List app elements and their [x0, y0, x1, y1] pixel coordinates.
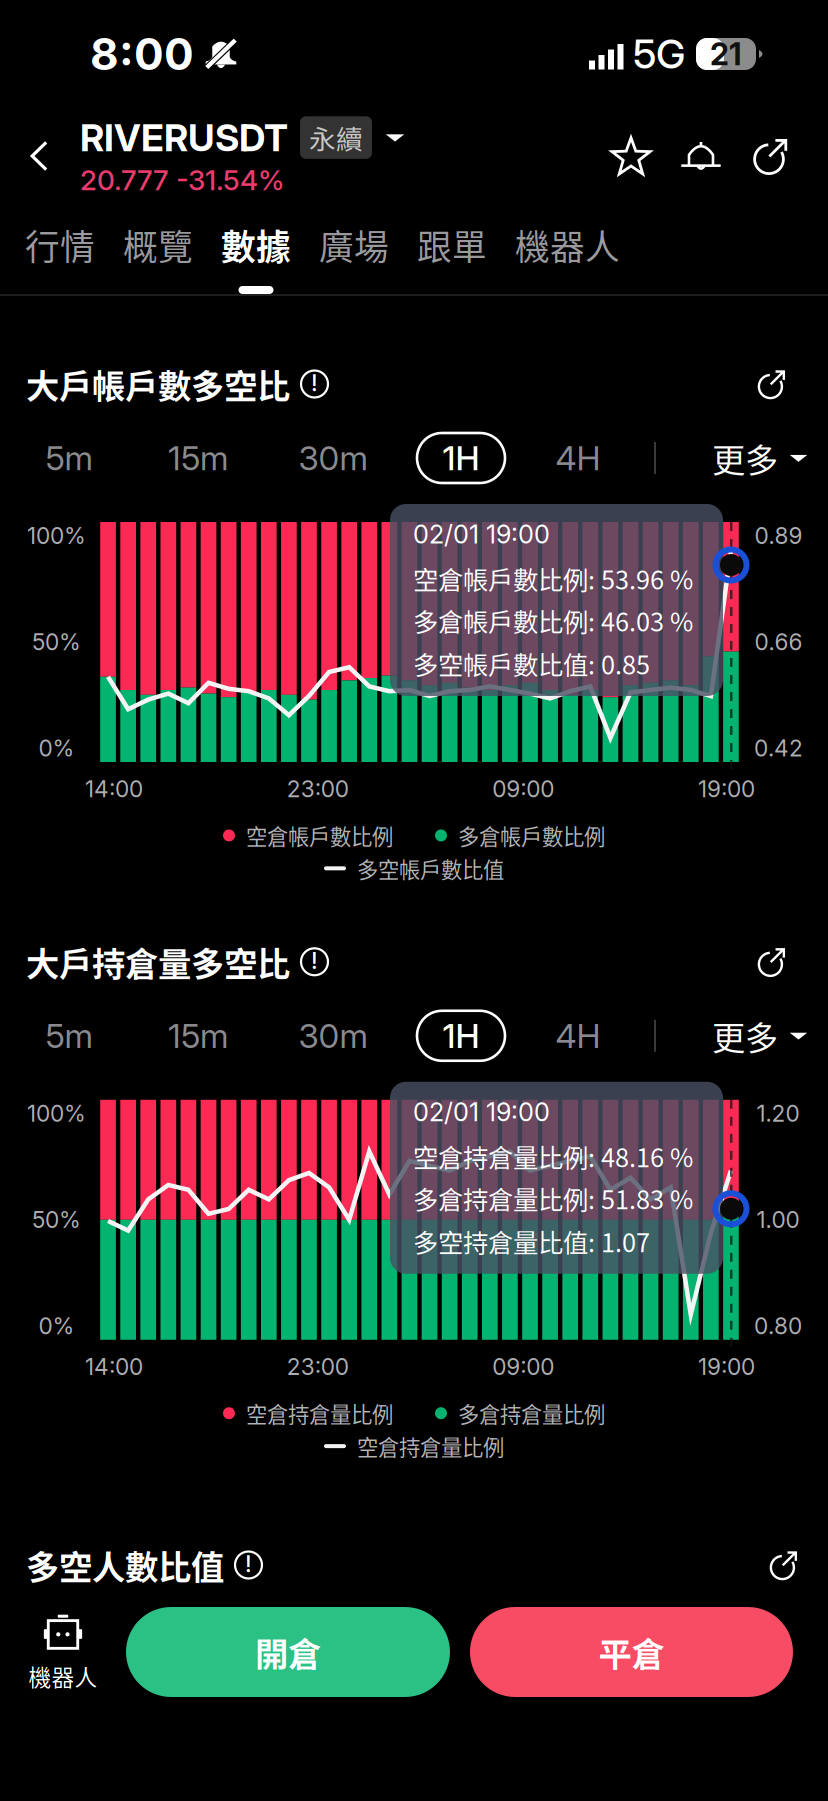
- staticText: 0%: [38, 1312, 74, 1340]
- staticText: 50%: [32, 1206, 81, 1233]
- staticText: 4H: [555, 1016, 600, 1056]
- staticText: 多空帳戶數比值: [357, 853, 504, 884]
- staticText: 21: [710, 35, 742, 72]
- button[interactable]: 更多: [712, 1000, 828, 1072]
- staticText: 數據: [221, 220, 291, 270]
- staticText: 30m: [298, 438, 367, 478]
- button[interactable]: 1H: [406, 422, 516, 494]
- staticText: 多空帳戶數比值: 0.85: [413, 645, 650, 682]
- staticText: 多倉帳戶數比例: 46.03 %: [413, 602, 693, 639]
- staticText: !: [311, 947, 318, 974]
- staticText: 更多: [712, 1012, 778, 1060]
- staticText: 8:00: [90, 27, 194, 81]
- staticText: 多倉持倉量比例: 51.83 %: [413, 1180, 693, 1216]
- button[interactable]: 平倉: [470, 1607, 793, 1697]
- staticText: 1H: [442, 1016, 479, 1056]
- staticText: 100%: [27, 522, 86, 549]
- button[interactable]: 5m: [14, 1000, 124, 1072]
- staticText: 19:00: [698, 775, 755, 803]
- staticText: 09:00: [492, 775, 554, 803]
- staticText: 0.42: [754, 735, 803, 762]
- staticText: 20.777 -31.54%: [80, 163, 285, 197]
- staticText: 行情: [25, 220, 95, 270]
- staticText: 14:00: [85, 1353, 143, 1380]
- staticText: 1.00: [756, 1206, 799, 1233]
- staticText: 多空人數比值: [26, 1541, 224, 1589]
- button[interactable]: 開倉: [126, 1607, 450, 1697]
- staticText: 30m: [298, 1016, 367, 1056]
- button[interactable]: 更多: [712, 422, 828, 494]
- staticText: 5m: [45, 1016, 92, 1056]
- button[interactable]: Open chart detail: [744, 934, 800, 990]
- staticText: 15m: [168, 1016, 228, 1056]
- staticText: 23:00: [287, 775, 349, 803]
- button[interactable]: 4H: [523, 1000, 633, 1072]
- button[interactable]: 跟單: [403, 204, 501, 294]
- button[interactable]: 30m: [278, 1000, 388, 1072]
- button[interactable]: 機器人: [501, 204, 634, 294]
- staticText: 大戶帳戶數多空比: [26, 360, 290, 408]
- staticText: 平倉: [598, 1628, 664, 1676]
- button[interactable]: 1H: [406, 1000, 516, 1072]
- staticText: 02/01 19:00: [413, 519, 550, 550]
- staticText: 永續: [309, 118, 363, 157]
- staticText: 09:00: [492, 1353, 554, 1380]
- staticText: 機器人: [515, 220, 620, 270]
- button[interactable]: 概覽: [109, 204, 207, 294]
- staticText: 多倉帳戶數比例: [458, 820, 605, 851]
- staticText: !: [245, 1550, 252, 1578]
- staticText: 50%: [32, 628, 81, 656]
- staticText: 機器人: [28, 1660, 97, 1692]
- staticText: 多空持倉量比值: 1.07: [413, 1223, 650, 1259]
- staticText: 0%: [38, 735, 74, 762]
- staticText: 15m: [168, 438, 228, 478]
- staticText: 空倉持倉量比例: 48.16 %: [413, 1138, 693, 1174]
- staticText: RIVERUSDT: [80, 115, 288, 160]
- staticText: 0.66: [754, 628, 802, 656]
- staticText: 19:00: [698, 1353, 755, 1380]
- staticText: 空倉持倉量比例: [246, 1398, 393, 1429]
- staticText: 1.20: [756, 1100, 799, 1127]
- staticText: 02/01 19:00: [413, 1097, 550, 1127]
- button[interactable]: 4H: [523, 422, 633, 494]
- button[interactable]: 30m: [278, 422, 388, 494]
- button[interactable]: 行情: [11, 204, 109, 294]
- button[interactable]: 多空人數比值: [0, 1535, 828, 1595]
- staticText: 5m: [45, 438, 92, 478]
- button[interactable]: 15m: [143, 1000, 253, 1072]
- staticText: 空倉帳戶數比例: 53.96 %: [413, 560, 693, 597]
- staticText: 更多: [712, 434, 778, 482]
- button[interactable]: 5m: [14, 422, 124, 494]
- staticText: 跟單: [417, 220, 487, 270]
- button[interactable]: 15m: [143, 422, 253, 494]
- staticText: 0.80: [754, 1312, 802, 1340]
- button[interactable]: 廣場: [305, 204, 403, 294]
- staticText: 概覽: [123, 220, 193, 270]
- staticText: 0.89: [754, 522, 802, 549]
- staticText: 大戶持倉量多空比: [26, 938, 290, 986]
- staticText: 1H: [442, 438, 479, 478]
- button[interactable]: Back: [0, 108, 80, 204]
- staticText: 5G: [633, 30, 685, 78]
- staticText: 100%: [27, 1100, 86, 1127]
- staticText: 空倉持倉量比例: [357, 1431, 504, 1462]
- staticText: 開倉: [255, 1628, 321, 1676]
- staticText: 廣場: [319, 220, 389, 270]
- staticText: 空倉帳戶數比例: [246, 820, 393, 851]
- button[interactable]: Open chart detail: [744, 356, 800, 412]
- button[interactable]: Add to favorites: [596, 121, 666, 191]
- staticText: !: [311, 369, 318, 397]
- button[interactable]: Share: [736, 121, 806, 191]
- button[interactable]: Price alert: [666, 121, 736, 191]
- staticText: 23:00: [287, 1353, 349, 1380]
- staticText: 4H: [555, 438, 600, 478]
- button[interactable]: 機器人: [0, 1607, 126, 1697]
- button[interactable]: 數據: [207, 204, 305, 294]
- staticText: 多倉持倉量比例: [458, 1398, 605, 1429]
- staticText: 14:00: [85, 775, 143, 803]
